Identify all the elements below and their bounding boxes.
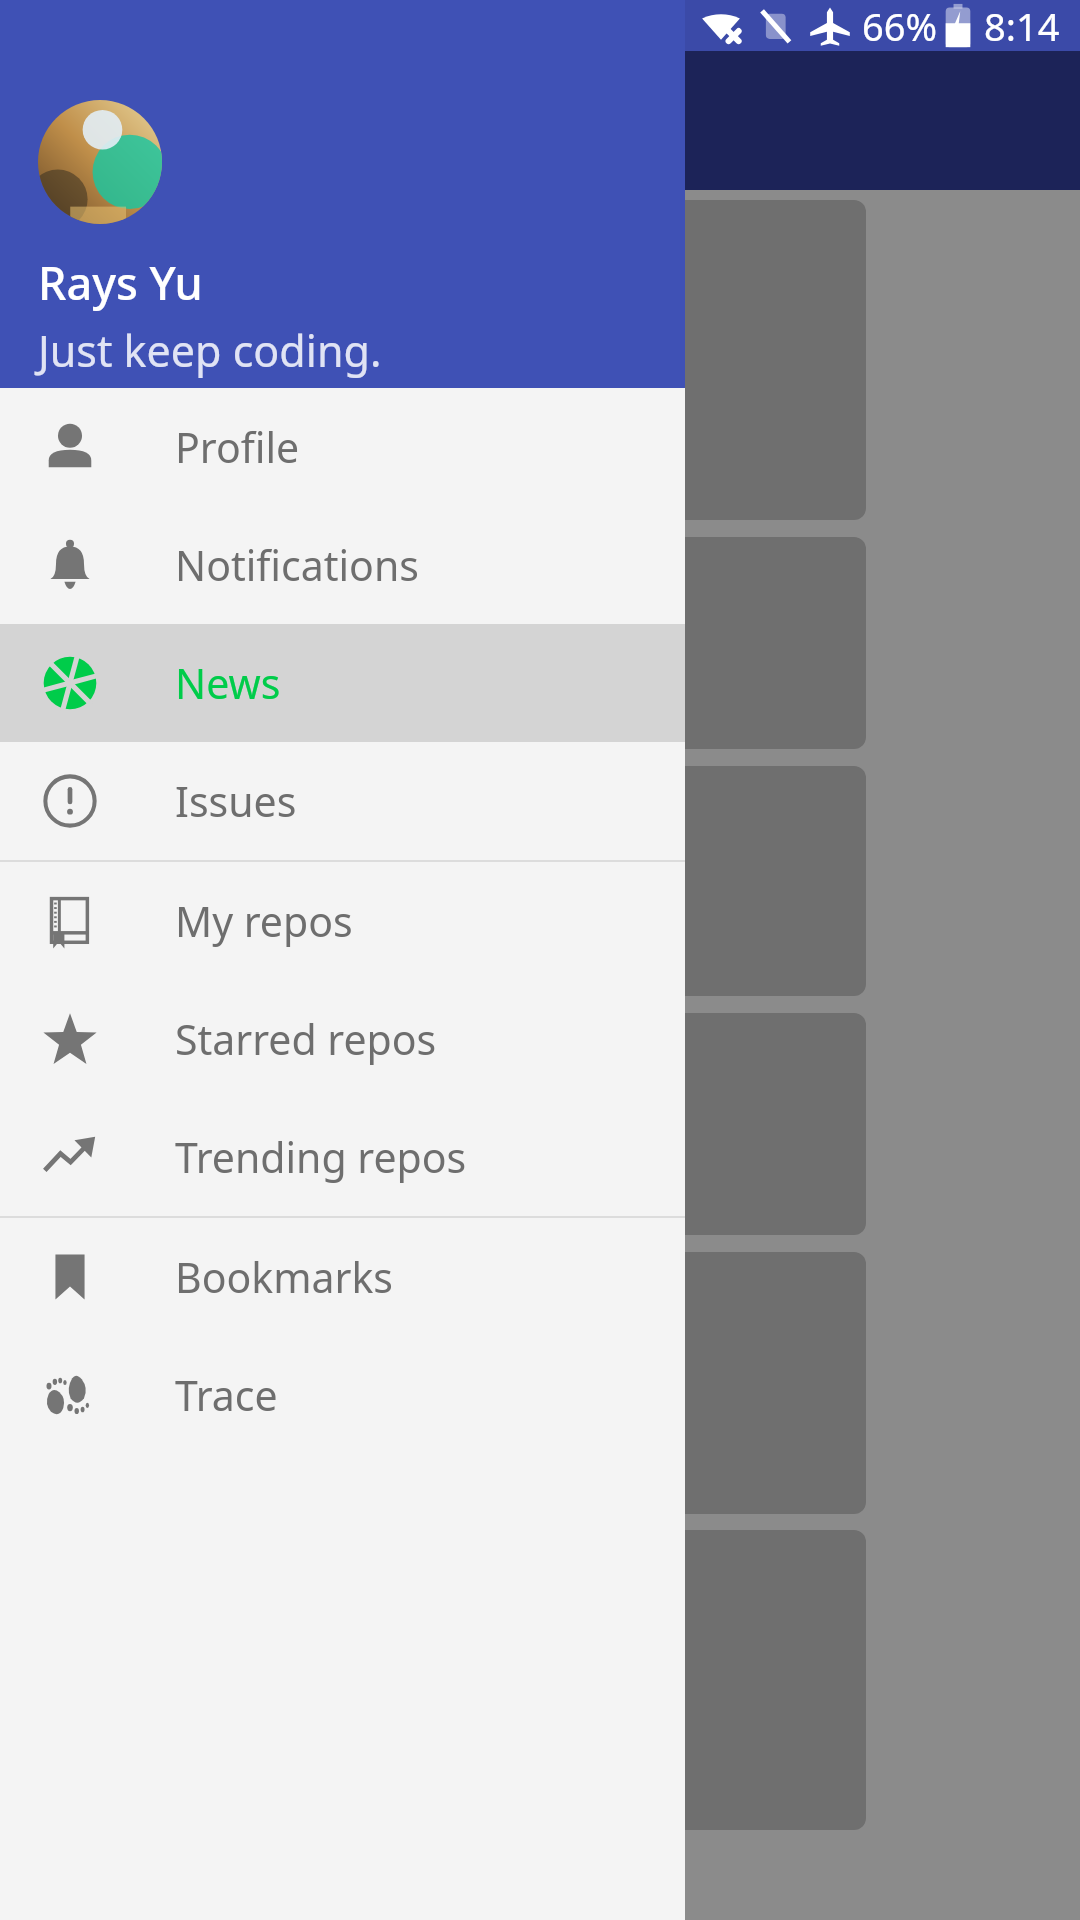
other: Profile photo [38,100,162,224]
staticText: Profile [175,419,300,475]
button[interactable]: Trending repos [0,1098,685,1216]
button[interactable]: Profile [0,388,685,506]
staticText: Notifications [175,537,419,593]
button[interactable]: My repos [0,862,685,980]
button[interactable]: 1 days ago [430,1530,866,1830]
staticText: 8:14 [984,0,1060,51]
staticText: 66% [862,0,938,51]
button[interactable]: Notifications [0,506,685,624]
staticText: minutes ago [450,573,685,627]
staticText: Starred repos [175,1011,437,1067]
button[interactable]: hours ago [430,1013,866,1235]
staticText: panes/ [448,366,608,430]
button[interactable]: News [0,624,685,742]
button[interactable]: hours ago [430,1252,866,1514]
staticText: News [175,655,281,711]
staticText: My repos [175,893,353,949]
staticText: Issues [175,773,297,829]
staticText: Bookmarks [175,1249,393,1305]
staticText: Just keep coding. [38,321,382,380]
button[interactable]: Bookmarks [0,1218,685,1336]
button[interactable]: Issues [0,742,685,860]
button[interactable]: Profile photo [0,0,685,388]
staticText: Trending repos [175,1129,467,1185]
button[interactable]: Starred repos [0,980,685,1098]
button[interactable]: hours ago [430,766,866,996]
button[interactable]: minutes ago [430,200,866,520]
button[interactable]: minutes ago [430,537,866,749]
staticText: Rays Yu [38,252,203,313]
button[interactable]: Trace [0,1336,685,1454]
staticText: Trace [175,1367,278,1423]
